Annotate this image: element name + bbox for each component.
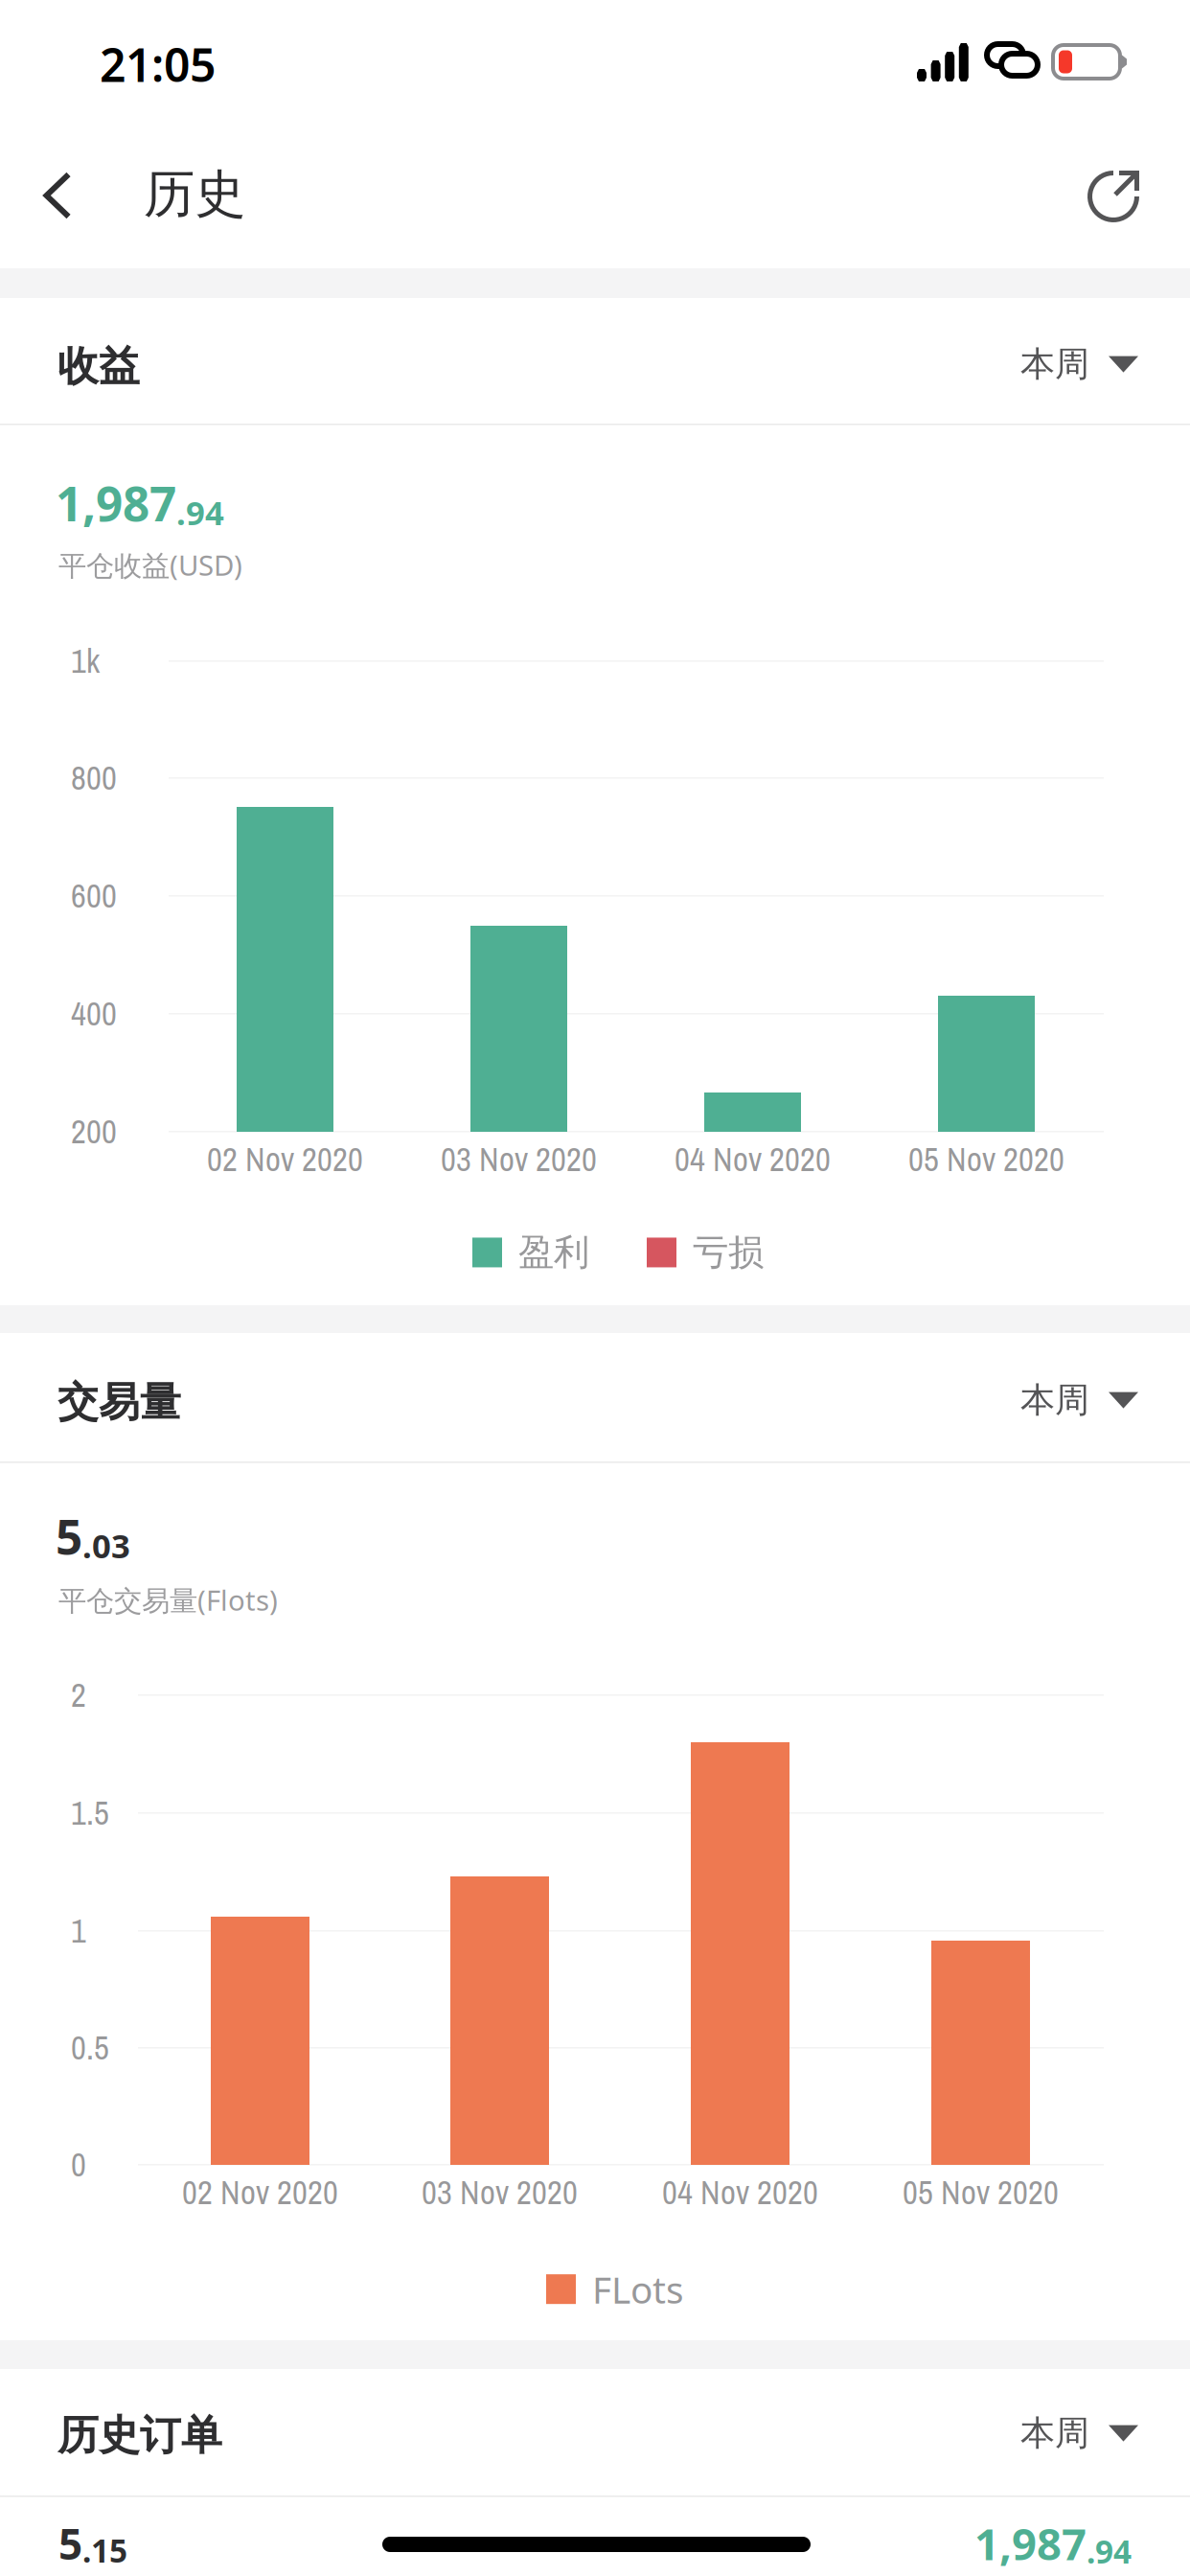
staticText: 05 Nov 2020: [908, 1137, 1064, 1181]
staticText: 03 Nov 2020: [441, 1137, 597, 1181]
button[interactable]: 5: [0, 2503, 1190, 2576]
staticText: 1,987: [974, 2515, 1087, 2572]
button[interactable]: 本周: [1003, 1356, 1156, 1444]
staticText: 04 Nov 2020: [662, 2170, 818, 2214]
staticText: 盈利: [518, 1230, 589, 1274]
staticText: FLots: [592, 2265, 684, 2314]
staticText: 05 Nov 2020: [903, 2170, 1059, 2214]
button[interactable]: Back: [11, 149, 103, 241]
staticText: 平仓收益(USD): [58, 546, 242, 584]
staticText: 600: [71, 873, 117, 918]
staticText: .94: [1087, 2530, 1132, 2572]
staticText: 历史: [144, 163, 245, 226]
button[interactable]: 本周: [1003, 2389, 1156, 2477]
staticText: 02 Nov 2020: [182, 2170, 338, 2214]
staticText: 交易量: [57, 1377, 181, 1427]
button[interactable]: 本周: [1003, 320, 1156, 408]
staticText: 收益: [57, 341, 140, 391]
staticText: 本周: [1020, 343, 1089, 385]
staticText: 800: [71, 755, 117, 800]
staticText: 亏损: [693, 1230, 764, 1274]
staticText: 本周: [1020, 2412, 1089, 2454]
staticText: 0.5: [71, 2025, 109, 2070]
staticText: 1: [71, 1908, 86, 1953]
staticText: 0: [71, 2142, 86, 2187]
staticText: .03: [82, 1523, 130, 1567]
staticText: 5: [56, 1505, 82, 1567]
button[interactable]: Share: [1067, 150, 1159, 242]
staticText: 5: [58, 2515, 82, 2571]
staticText: 02 Nov 2020: [207, 1137, 363, 1181]
staticText: 04 Nov 2020: [675, 1137, 831, 1181]
staticText: 03 Nov 2020: [422, 2170, 578, 2214]
staticText: .15: [82, 2529, 127, 2571]
staticText: 平仓交易量(Flots): [58, 1581, 278, 1619]
staticText: 历史订单: [57, 2410, 222, 2460]
staticText: 1.5: [71, 1790, 109, 1835]
staticText: 2: [71, 1672, 86, 1717]
staticText: 200: [71, 1109, 117, 1154]
staticText: .94: [176, 490, 224, 534]
staticText: 1,987: [56, 471, 176, 534]
staticText: 21:05: [100, 34, 216, 95]
staticText: 400: [71, 991, 117, 1036]
staticText: 本周: [1020, 1379, 1089, 1421]
staticText: 1k: [71, 638, 100, 683]
